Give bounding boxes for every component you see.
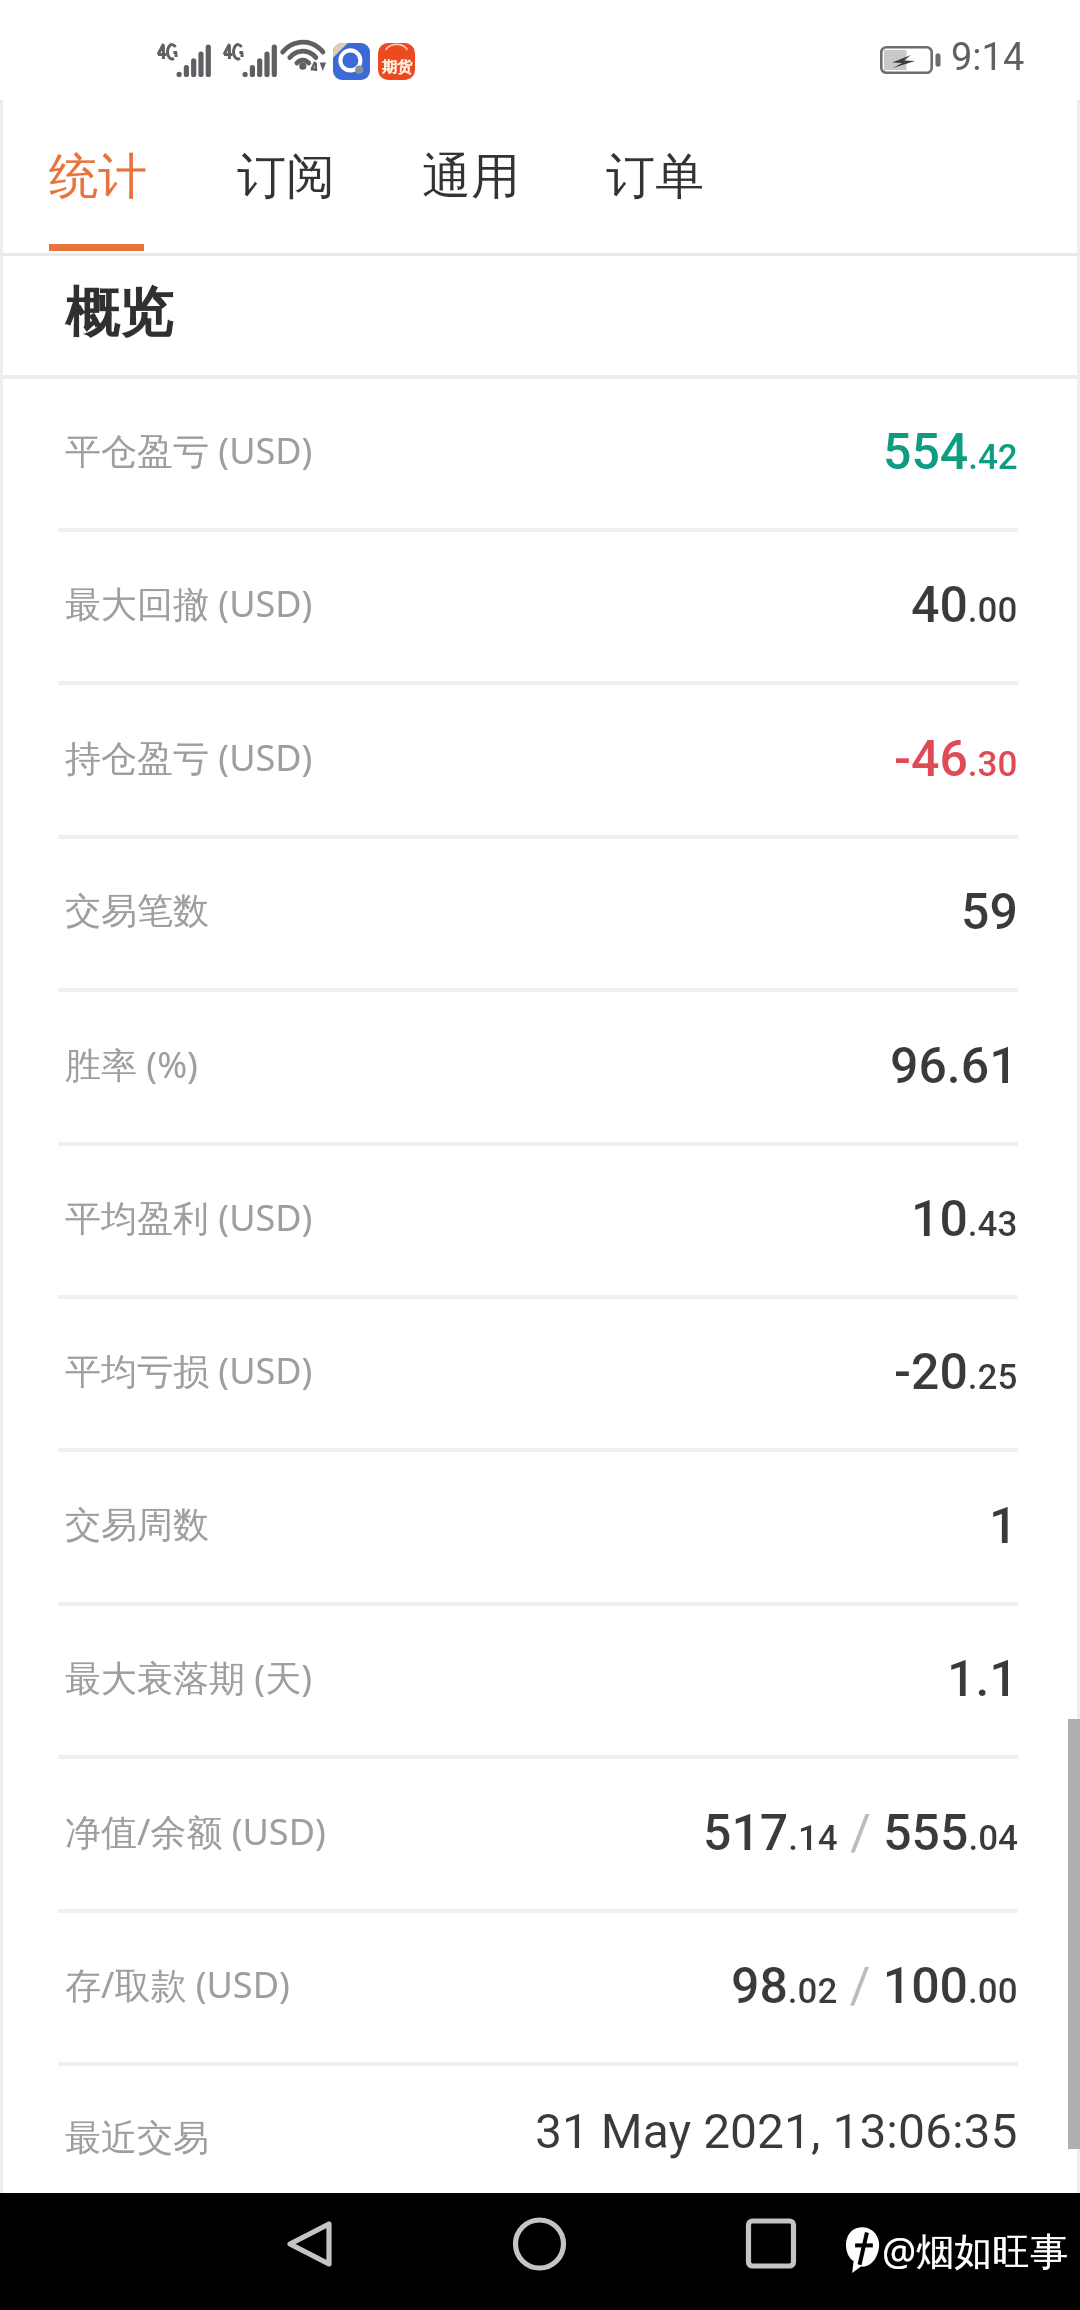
staticText: 96.61 xyxy=(890,1037,1018,1096)
staticText: 517.14 / 555.04 xyxy=(703,1804,1018,1863)
button[interactable]: 平均盈利 (USD) xyxy=(0,1146,1080,1299)
button[interactable]: 交易周数 xyxy=(0,1453,1080,1606)
staticText: 98.02 / 100.00 xyxy=(731,1957,1018,2016)
staticText: 31 May 2021, 13:06:35 xyxy=(535,2103,1018,2159)
staticText: 胜率 (%) xyxy=(65,1040,198,1089)
staticText: 存/取款 (USD) xyxy=(65,1960,290,2009)
staticText: 持仓盈亏 (USD) xyxy=(65,733,313,782)
staticText: 统计 xyxy=(49,146,147,208)
staticText: 交易笔数 xyxy=(65,888,209,933)
button[interactable]: 平均亏损 (USD) xyxy=(0,1299,1080,1452)
staticText: 1.1 xyxy=(947,1650,1018,1709)
button[interactable]: 存/取款 (USD) xyxy=(0,1913,1080,2066)
staticText: 9:14 xyxy=(951,35,1025,80)
staticText: 净值/余额 (USD) xyxy=(65,1807,326,1856)
staticText: 期货 xyxy=(382,58,412,77)
button[interactable]: 最大回撤 (USD) xyxy=(0,532,1080,685)
staticText: -46.30 xyxy=(894,730,1018,789)
staticText: 40.00 xyxy=(911,576,1018,635)
staticText: 平均盈利 (USD) xyxy=(65,1193,313,1242)
staticText: 554.42 xyxy=(883,423,1018,482)
staticText: 通用 xyxy=(422,146,520,208)
staticText: 59 xyxy=(961,883,1018,942)
staticText: 最近交易 xyxy=(65,2115,209,2160)
staticText: 概览 xyxy=(65,279,173,347)
button[interactable]: 胜率 (%) xyxy=(0,993,1080,1146)
staticText: 交易周数 xyxy=(65,1502,209,1547)
staticText: 平仓盈亏 (USD) xyxy=(65,426,313,475)
staticText: -20.25 xyxy=(894,1343,1018,1402)
staticText: 最大回撤 (USD) xyxy=(65,579,313,628)
button[interactable]: 最大衰落期 (天) xyxy=(0,1606,1080,1759)
button[interactable]: 订阅 xyxy=(237,99,335,253)
staticText: 订单 xyxy=(606,146,704,208)
button[interactable]: 统计 xyxy=(49,99,147,253)
staticText: 订阅 xyxy=(237,146,335,208)
button[interactable]: 通用 xyxy=(422,99,520,253)
staticText: 平均亏损 (USD) xyxy=(65,1346,313,1395)
staticText: 10.43 xyxy=(911,1190,1018,1249)
button[interactable]: 净值/余额 (USD) xyxy=(0,1760,1080,1913)
button[interactable]: 平仓盈亏 (USD) xyxy=(0,379,1080,532)
button[interactable]: 持仓盈亏 (USD) xyxy=(0,686,1080,839)
button[interactable]: 交易笔数 xyxy=(0,839,1080,992)
staticText: @烟如旺事 xyxy=(882,2224,1069,2276)
staticText: 最大衰落期 (天) xyxy=(65,1653,312,1702)
button[interactable]: Home xyxy=(500,2205,580,2283)
staticText: 1 xyxy=(989,1497,1018,1556)
button[interactable]: Recents xyxy=(729,2205,809,2283)
button[interactable]: Back xyxy=(267,2205,351,2283)
button[interactable]: 订单 xyxy=(606,99,704,253)
button[interactable]: 最近交易 xyxy=(0,2066,1080,2219)
